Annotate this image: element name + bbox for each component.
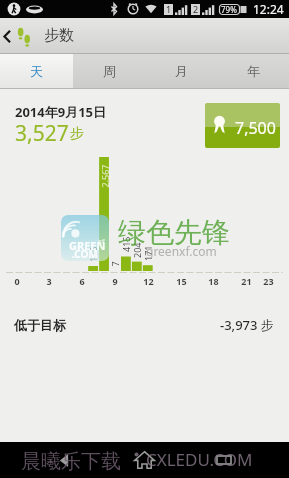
staticText: 0	[14, 275, 20, 287]
button[interactable]: 年	[217, 54, 289, 88]
staticText: 12	[143, 275, 154, 287]
staticText: 步数	[44, 26, 74, 45]
staticText: 步	[70, 125, 84, 143]
staticText: 2	[193, 3, 199, 14]
button[interactable]: Back	[0, 18, 14, 54]
button[interactable]: Back	[24, 442, 104, 478]
staticText: 9	[112, 275, 118, 287]
button[interactable]: 月	[145, 54, 217, 88]
staticText: 3	[46, 275, 52, 287]
staticText: 204	[131, 242, 143, 258]
staticText: 12:24	[253, 1, 284, 17]
staticText: xf	[98, 237, 105, 247]
staticText: 周	[103, 63, 116, 79]
staticText: greenxf.com	[146, 243, 217, 259]
staticText: 1	[166, 3, 172, 14]
staticText: -3,973 步	[220, 316, 274, 334]
button[interactable]: 天	[0, 54, 73, 88]
staticText: 天	[30, 63, 43, 79]
staticText: 3,527	[15, 119, 69, 148]
staticText: 15	[176, 275, 187, 287]
staticText: 2,567	[98, 163, 110, 187]
staticText: 7,500	[235, 117, 276, 139]
staticText: 绿色先锋	[118, 215, 230, 250]
staticText: 23	[263, 275, 274, 287]
staticText: 171	[142, 245, 154, 261]
button[interactable]: Recent apps	[184, 442, 264, 478]
staticText: CXLEDU.COM	[146, 448, 253, 471]
button[interactable]: 7,500	[205, 103, 280, 148]
staticText: 7	[108, 260, 120, 266]
staticText: 415	[120, 236, 132, 252]
button[interactable]: 周	[73, 54, 145, 88]
button[interactable]: Home	[104, 442, 184, 478]
staticText: 月	[175, 63, 188, 79]
staticText: 18	[208, 275, 219, 287]
staticText: 6	[79, 275, 85, 287]
staticText: 79%	[221, 4, 237, 15]
staticText: 133	[87, 246, 99, 262]
staticText: 21	[241, 275, 252, 287]
staticText: 低于目标	[14, 317, 66, 333]
staticText: 晨曦乐下载	[21, 449, 121, 474]
staticText: GREEN	[69, 238, 106, 253]
staticText: .COM	[72, 247, 98, 261]
staticText: 年	[247, 63, 260, 79]
staticText: 2014年9月15日	[15, 103, 107, 121]
